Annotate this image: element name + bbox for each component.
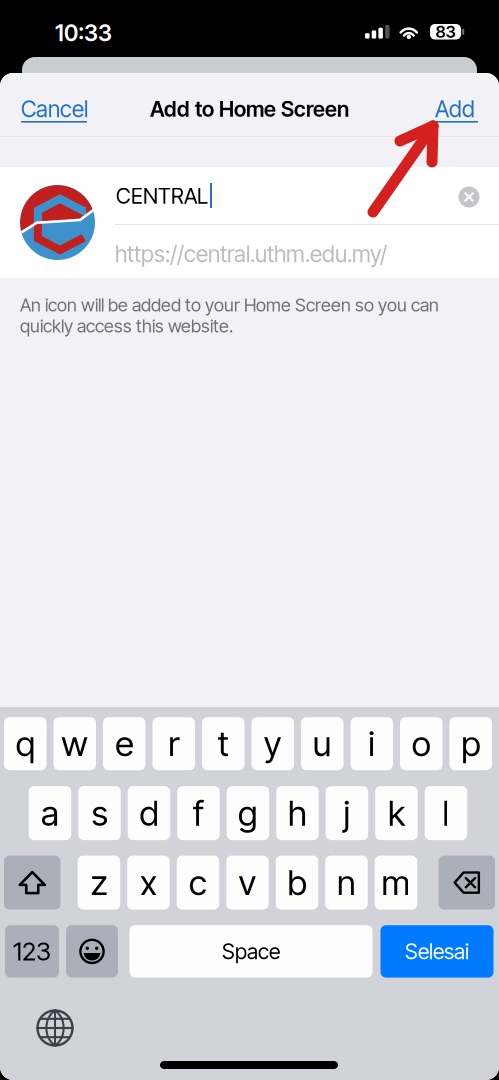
button[interactable]: Switch keyboard (33, 1006, 77, 1050)
button[interactable]: k (375, 786, 418, 840)
staticText: s (91, 792, 107, 834)
staticText: Add (435, 95, 475, 123)
button[interactable]: t (202, 717, 244, 770)
button[interactable]: h (276, 786, 319, 840)
staticText: r (168, 723, 179, 765)
button[interactable]: Emoji (66, 925, 118, 978)
staticText: k (388, 792, 405, 834)
button[interactable]: 123 (5, 925, 59, 978)
button[interactable]: d (128, 786, 170, 840)
button[interactable]: f (177, 786, 220, 840)
staticText: 123 (13, 936, 51, 967)
staticText: h (288, 792, 307, 834)
staticText: t (218, 723, 229, 765)
button[interactable]: Shift (4, 856, 60, 910)
staticText: a (41, 792, 59, 834)
staticText: u (313, 723, 332, 765)
button[interactable]: m (375, 856, 417, 910)
button[interactable]: r (152, 717, 195, 770)
staticText: v (238, 862, 256, 903)
button[interactable]: x (127, 856, 170, 910)
button[interactable]: Clear text (451, 179, 487, 215)
staticText: Cancel (21, 95, 88, 123)
button[interactable]: q (4, 717, 46, 770)
button[interactable]: c (177, 856, 219, 910)
button[interactable]: Selesai (380, 925, 493, 978)
button[interactable]: Add (435, 97, 478, 125)
staticText: l (442, 792, 449, 834)
button[interactable]: e (103, 717, 145, 770)
button[interactable]: o (400, 717, 442, 770)
button[interactable]: w (53, 717, 96, 770)
staticText: g (238, 792, 258, 834)
button[interactable]: z (78, 856, 120, 910)
button[interactable]: a (29, 786, 71, 840)
button[interactable]: Space (129, 925, 372, 978)
staticText: c (189, 862, 207, 903)
staticText: q (16, 723, 35, 765)
staticText: m (381, 862, 410, 903)
button[interactable]: Delete (438, 856, 495, 910)
staticText: Selesai (405, 938, 469, 964)
button[interactable]: y (251, 717, 294, 770)
staticText: z (90, 862, 107, 903)
button[interactable]: g (227, 786, 269, 840)
staticText: i (368, 723, 375, 765)
button[interactable]: n (325, 856, 368, 910)
staticText: quickly access this website. (20, 315, 233, 337)
staticText: j (343, 792, 350, 834)
staticText: Add to Home Screen (150, 96, 349, 122)
button[interactable]: p (449, 717, 492, 770)
button[interactable]: u (301, 717, 343, 770)
button[interactable]: s (78, 786, 121, 840)
staticText: p (461, 723, 480, 765)
staticText: b (287, 862, 306, 903)
staticText: d (139, 792, 158, 834)
staticText: Space (222, 938, 280, 964)
staticText: 83 (435, 22, 455, 42)
button[interactable]: b (276, 856, 318, 910)
staticText: w (61, 723, 88, 765)
staticText: x (140, 862, 157, 903)
staticText: n (337, 862, 356, 903)
staticText: 10:33 (55, 19, 112, 47)
staticText: https://central.uthm.edu.my/ (115, 240, 387, 268)
staticText: f (193, 792, 204, 834)
button[interactable]: Cancel (21, 97, 91, 125)
button[interactable]: i (350, 717, 393, 770)
staticText: CENTRAL (116, 183, 208, 209)
staticText: e (115, 723, 133, 765)
button[interactable]: j (326, 786, 368, 840)
button[interactable]: l (425, 786, 467, 840)
staticText: An icon will be added to your Home Scree… (20, 294, 439, 316)
staticText: y (264, 723, 282, 765)
staticText: o (412, 723, 431, 765)
button[interactable]: v (226, 856, 269, 910)
